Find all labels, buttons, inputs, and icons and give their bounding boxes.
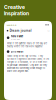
staticText: 4 min ago: [11, 38, 20, 41]
staticText: Dream journal: [10, 29, 32, 32]
staticText: Nora Vance: [11, 35, 23, 38]
button[interactable]: More options: [45, 24, 49, 26]
staticText: Inspiration: [4, 10, 29, 17]
staticText: MAR 04: [7, 23, 17, 26]
staticText: Ellis Marsh: [11, 50, 23, 53]
staticText: Ideas rarely arrive fully formed. They s…: [7, 54, 49, 73]
staticText: Creative: [4, 4, 25, 10]
staticText: 12: [47, 29, 49, 32]
staticText: What if the quietest hours of the day ar…: [7, 42, 47, 48]
button[interactable]: Dream journal: [7, 29, 49, 32]
